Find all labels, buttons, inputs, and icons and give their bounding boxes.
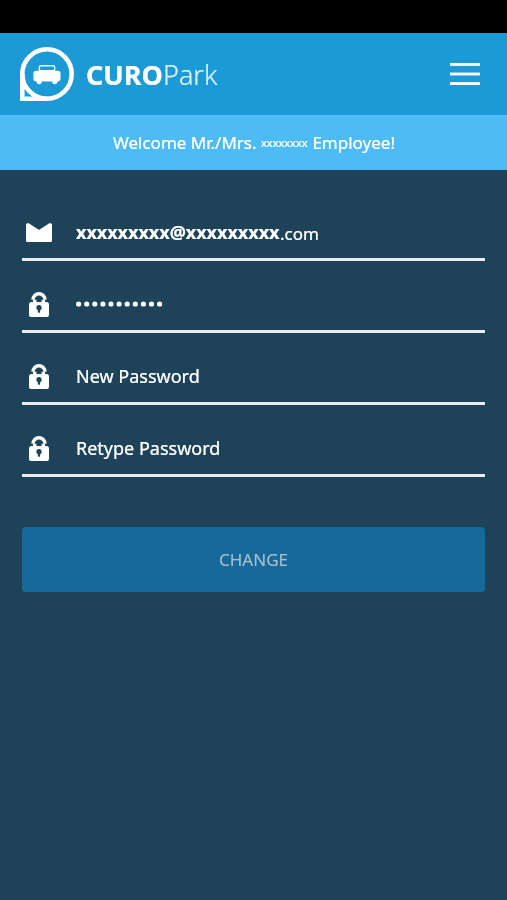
staticText: New Password xyxy=(76,364,200,389)
button[interactable]: Open navigation menu xyxy=(441,50,489,98)
staticText: .com xyxy=(280,222,319,245)
button[interactable] xyxy=(22,278,485,350)
staticText: xxxxxxxxx@xxxxxxxxx xyxy=(76,220,280,245)
button[interactable]: CHANGE xyxy=(22,527,485,592)
staticText: xxxxxxxx xyxy=(261,135,308,150)
button[interactable]: Retype Password xyxy=(22,422,485,494)
staticText: CURO xyxy=(86,56,163,93)
staticText: Park xyxy=(163,56,218,93)
button[interactable]: xxxxxxxxx@xxxxxxxxx xyxy=(22,206,485,278)
staticText: Welcome Mr./Mrs. xyxy=(113,131,261,154)
staticText: Employee! xyxy=(308,131,395,154)
staticText: Retype Password xyxy=(76,436,221,461)
button[interactable]: New Password xyxy=(22,350,485,422)
staticText: CHANGE xyxy=(219,548,288,571)
